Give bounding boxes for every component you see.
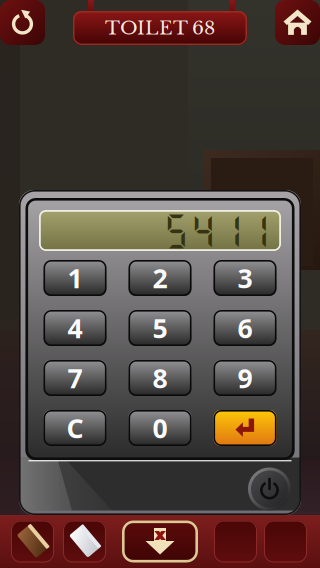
button[interactable]: 4 [43, 310, 106, 346]
button[interactable]: 3 [213, 260, 276, 296]
button[interactable]: 2 [128, 260, 191, 296]
button[interactable]: Enter [213, 410, 276, 446]
button[interactable]: C [43, 410, 106, 446]
staticText: 1 [67, 260, 82, 296]
staticText: 2 [152, 260, 167, 296]
button[interactable]: Inventory slot [63, 520, 106, 562]
button[interactable]: Drop item [122, 520, 198, 562]
staticText: 8 [152, 360, 167, 396]
button[interactable]: 5 [128, 310, 191, 346]
button[interactable]: 0 [128, 410, 191, 446]
staticText: 4 [67, 310, 82, 346]
staticText: 7 [67, 360, 82, 396]
button[interactable]: 9 [213, 360, 276, 396]
staticText: C [66, 410, 83, 446]
staticText: TOILET 68 [105, 16, 215, 39]
staticText: 6 [237, 310, 252, 346]
staticText: 5411 [163, 209, 271, 252]
button[interactable]: 8 [128, 360, 191, 396]
staticText: 9 [237, 360, 252, 396]
button[interactable]: 7 [43, 360, 106, 396]
button[interactable]: Power [248, 467, 291, 510]
staticText: 0 [152, 410, 167, 446]
button[interactable]: Restart level [0, 0, 45, 45]
button[interactable]: Home [275, 0, 320, 45]
button[interactable]: 6 [213, 310, 276, 346]
button[interactable]: Inventory slot [11, 520, 54, 562]
button[interactable]: 1 [43, 260, 106, 296]
button[interactable]: Inventory slot [214, 520, 257, 562]
staticText: 3 [237, 260, 252, 296]
staticText: 5 [152, 310, 167, 346]
button[interactable]: Inventory slot [264, 520, 307, 562]
